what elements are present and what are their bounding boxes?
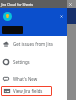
- button[interactable]: Get issues from Jira: [0, 36, 67, 51]
- button[interactable]: Settings: [0, 51, 67, 72]
- button[interactable]: Dismiss banner: [59, 14, 64, 19]
- staticText: What's New: [13, 76, 38, 82]
- button[interactable]: What's New: [0, 72, 67, 85]
- button[interactable]: Close: [68, 2, 73, 7]
- button[interactable]: [2, 26, 23, 34]
- button[interactable]: View Jira fields: [1, 86, 52, 96]
- staticText: Get issues from Jira: [13, 41, 53, 47]
- staticText: View Jira fields: [13, 88, 43, 94]
- staticText: Settings: [13, 59, 30, 65]
- staticText: Jira Cloud for Sheets: [1, 2, 34, 7]
